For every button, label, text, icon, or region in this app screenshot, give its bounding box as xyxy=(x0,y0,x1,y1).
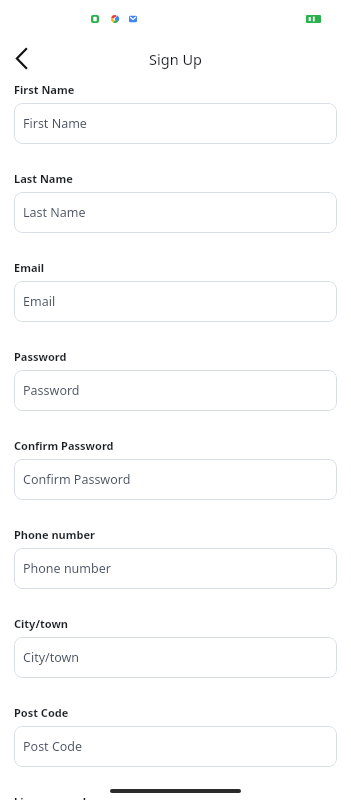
button[interactable]: Password xyxy=(14,370,337,411)
staticText: Sign Up xyxy=(0,49,351,69)
button[interactable]: Email xyxy=(14,281,337,322)
staticText: Confirm Password xyxy=(23,471,131,488)
button[interactable]: Post Code xyxy=(14,726,337,767)
staticText: Password xyxy=(14,349,67,364)
staticText: Phone number xyxy=(14,527,95,542)
button[interactable]: City/town xyxy=(14,637,337,678)
button[interactable]: Back xyxy=(6,43,36,73)
staticText: First Name xyxy=(23,115,87,132)
button[interactable]: First Name xyxy=(14,103,337,144)
staticText: Post Code xyxy=(14,705,69,720)
staticText: Email xyxy=(14,260,45,275)
staticText: License number xyxy=(14,794,102,800)
staticText: Phone number xyxy=(23,560,111,577)
staticText: City/town xyxy=(23,649,80,666)
button[interactable]: Last Name xyxy=(14,192,337,233)
button[interactable]: Phone number xyxy=(14,548,337,589)
button[interactable]: Confirm Password xyxy=(14,459,337,500)
staticText: Password xyxy=(23,382,80,399)
staticText: First Name xyxy=(14,82,75,97)
staticText: Post Code xyxy=(23,738,83,755)
staticText: City/town xyxy=(14,616,68,631)
staticText: Last Name xyxy=(14,171,73,186)
staticText: Email xyxy=(23,293,56,310)
staticText: Confirm Password xyxy=(14,438,114,453)
staticText: Last Name xyxy=(23,204,86,221)
